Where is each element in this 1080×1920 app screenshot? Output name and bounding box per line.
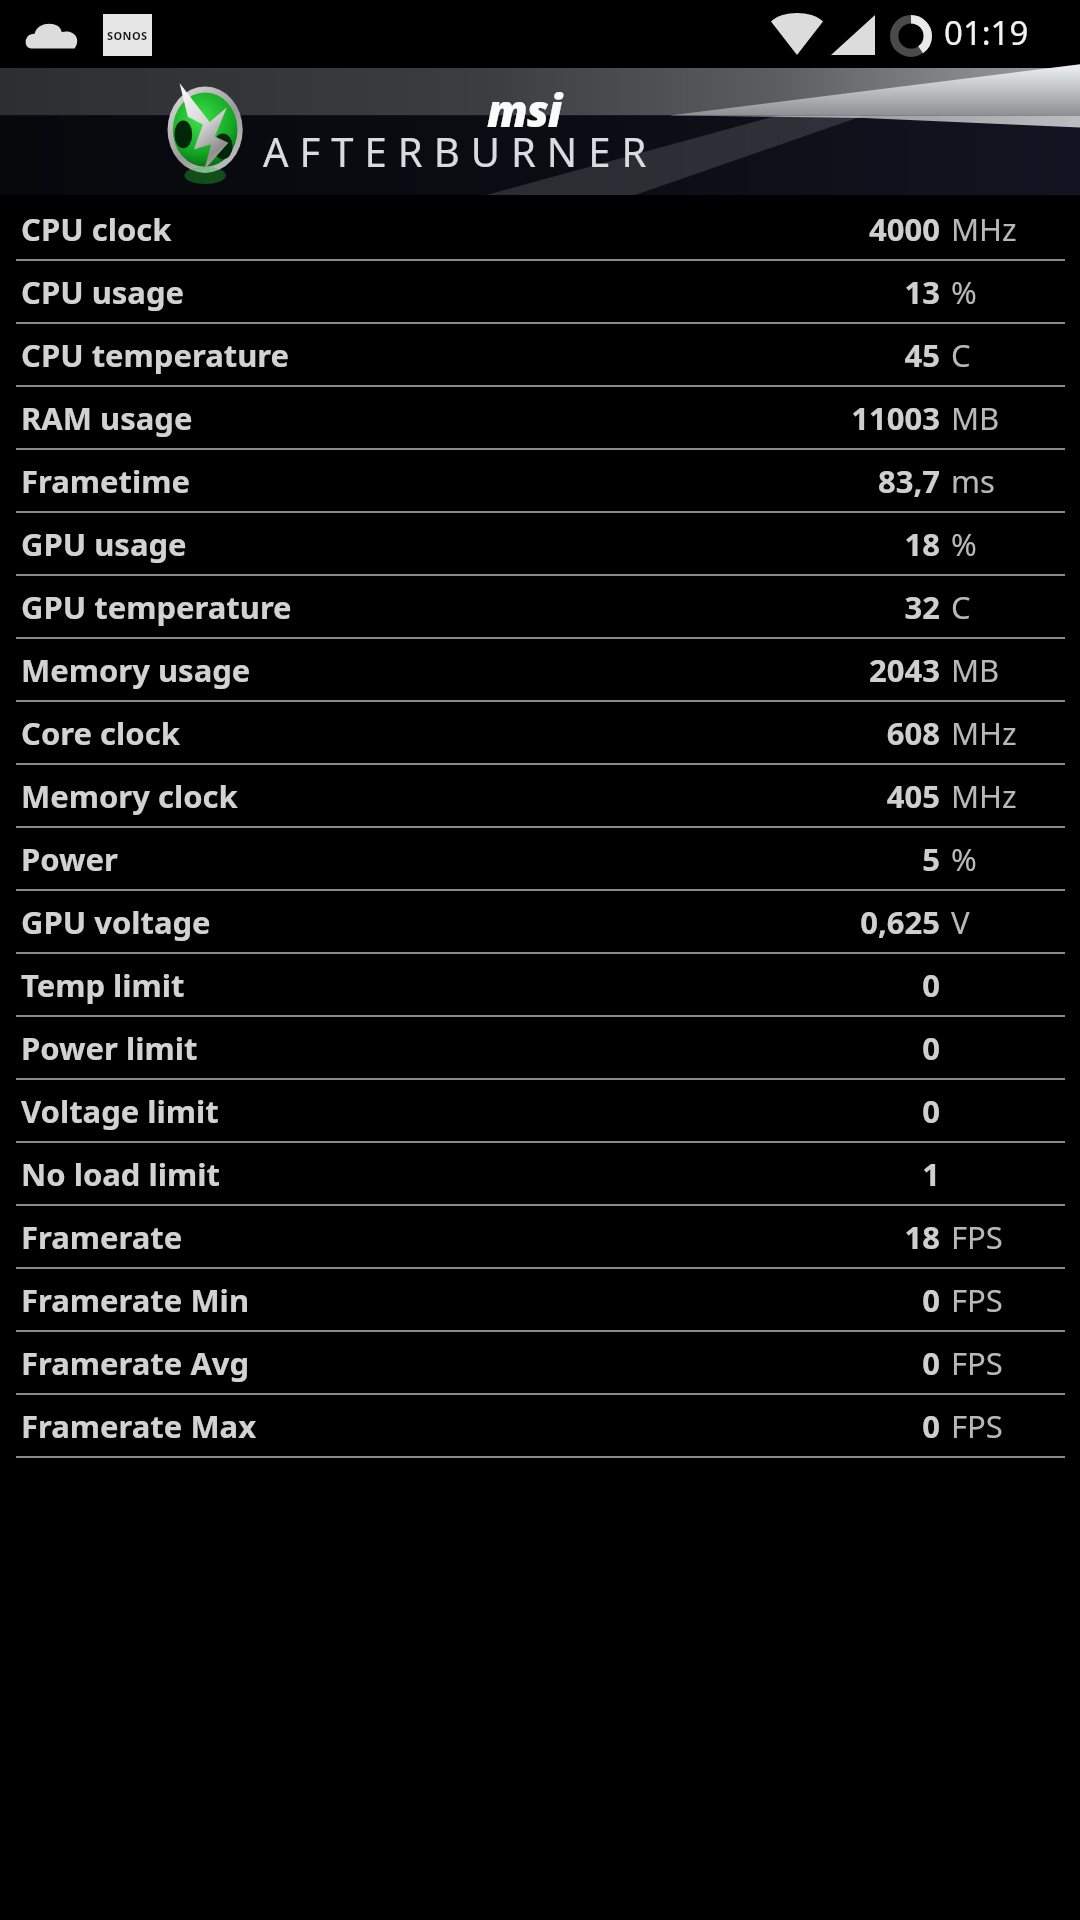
staticText: 0 [640, 1405, 940, 1447]
staticText: No load limit [21, 1153, 220, 1195]
staticText: 18 [640, 1216, 940, 1258]
staticText: 5 [640, 838, 940, 880]
button[interactable]: CPU clock [0, 198, 1080, 261]
button[interactable]: Frametime [0, 450, 1080, 513]
staticText: Framerate Max [21, 1405, 257, 1447]
staticText: MB [951, 649, 1000, 691]
staticText: 1 [640, 1153, 940, 1195]
button[interactable]: RAM usage [0, 387, 1080, 450]
other: Wi-Fi [771, 15, 823, 55]
button[interactable]: Framerate Min [0, 1269, 1080, 1332]
staticText: 4000 [640, 208, 940, 250]
staticText: 83,7 [640, 460, 940, 502]
staticText: AFTERBURNER [263, 124, 658, 178]
staticText: CPU temperature [21, 334, 290, 376]
staticText: 0 [640, 1090, 940, 1132]
staticText: 405 [640, 775, 940, 817]
staticText: 13 [640, 271, 940, 313]
button[interactable]: Core clock [0, 702, 1080, 765]
staticText: 45 [640, 334, 940, 376]
staticText: 11003 [640, 397, 940, 439]
staticText: % [951, 523, 977, 565]
button[interactable]: GPU voltage [0, 891, 1080, 954]
staticText: FPS [951, 1216, 1003, 1258]
staticText: V [951, 901, 970, 943]
staticText: RAM usage [21, 397, 193, 439]
staticText: Memory clock [21, 775, 238, 817]
staticText: FPS [951, 1279, 1003, 1321]
button[interactable]: GPU temperature [0, 576, 1080, 639]
staticText: 01:19 [944, 10, 1029, 55]
button[interactable]: Memory usage [0, 639, 1080, 702]
staticText: CPU clock [21, 208, 172, 250]
button[interactable]: Framerate [0, 1206, 1080, 1269]
staticText: MB [951, 397, 1000, 439]
staticText: 0 [640, 1027, 940, 1069]
staticText: 608 [640, 712, 940, 754]
staticText: msi [487, 80, 562, 140]
staticText: C [951, 586, 971, 628]
staticText: 0,625 [640, 901, 940, 943]
staticText: Core clock [21, 712, 180, 754]
staticText: C [951, 334, 971, 376]
staticText: ms [951, 460, 995, 502]
staticText: % [951, 271, 977, 313]
staticText: GPU voltage [21, 901, 211, 943]
staticText: 32 [640, 586, 940, 628]
button[interactable]: Framerate Max [0, 1395, 1080, 1458]
button[interactable]: Voltage limit [0, 1080, 1080, 1143]
staticText: 18 [640, 523, 940, 565]
staticText: Power [21, 838, 118, 880]
button[interactable]: Power [0, 828, 1080, 891]
staticText: Framerate [21, 1216, 183, 1258]
staticText: Power limit [21, 1027, 198, 1069]
button[interactable]: CPU usage [0, 261, 1080, 324]
staticText: MHz [951, 712, 1017, 754]
staticText: 2043 [640, 649, 940, 691]
other: Battery [890, 15, 932, 57]
staticText: MHz [951, 775, 1017, 817]
staticText: MHz [951, 208, 1017, 250]
staticText: FPS [951, 1405, 1003, 1447]
staticText: Framerate Avg [21, 1342, 250, 1384]
staticText: CPU usage [21, 271, 185, 313]
staticText: GPU temperature [21, 586, 292, 628]
staticText: FPS [951, 1342, 1003, 1384]
button[interactable]: Power limit [0, 1017, 1080, 1080]
staticText: Frametime [21, 460, 191, 502]
button[interactable]: No load limit [0, 1143, 1080, 1206]
staticText: 0 [640, 964, 940, 1006]
staticText: % [951, 838, 977, 880]
other: Cloud sync [26, 20, 80, 50]
staticText: Framerate Min [21, 1279, 250, 1321]
staticText: GPU usage [21, 523, 187, 565]
button[interactable]: Temp limit [0, 954, 1080, 1017]
staticText: Memory usage [21, 649, 251, 691]
staticText: Temp limit [21, 964, 185, 1006]
staticText: Voltage limit [21, 1090, 219, 1132]
button[interactable]: GPU usage [0, 513, 1080, 576]
button[interactable]: Framerate Avg [0, 1332, 1080, 1395]
button[interactable]: Memory clock [0, 765, 1080, 828]
staticText: 0 [640, 1342, 940, 1384]
staticText: SONOS [107, 28, 148, 43]
other: Mobile signal [831, 15, 875, 55]
button[interactable]: CPU temperature [0, 324, 1080, 387]
staticText: 0 [640, 1279, 940, 1321]
